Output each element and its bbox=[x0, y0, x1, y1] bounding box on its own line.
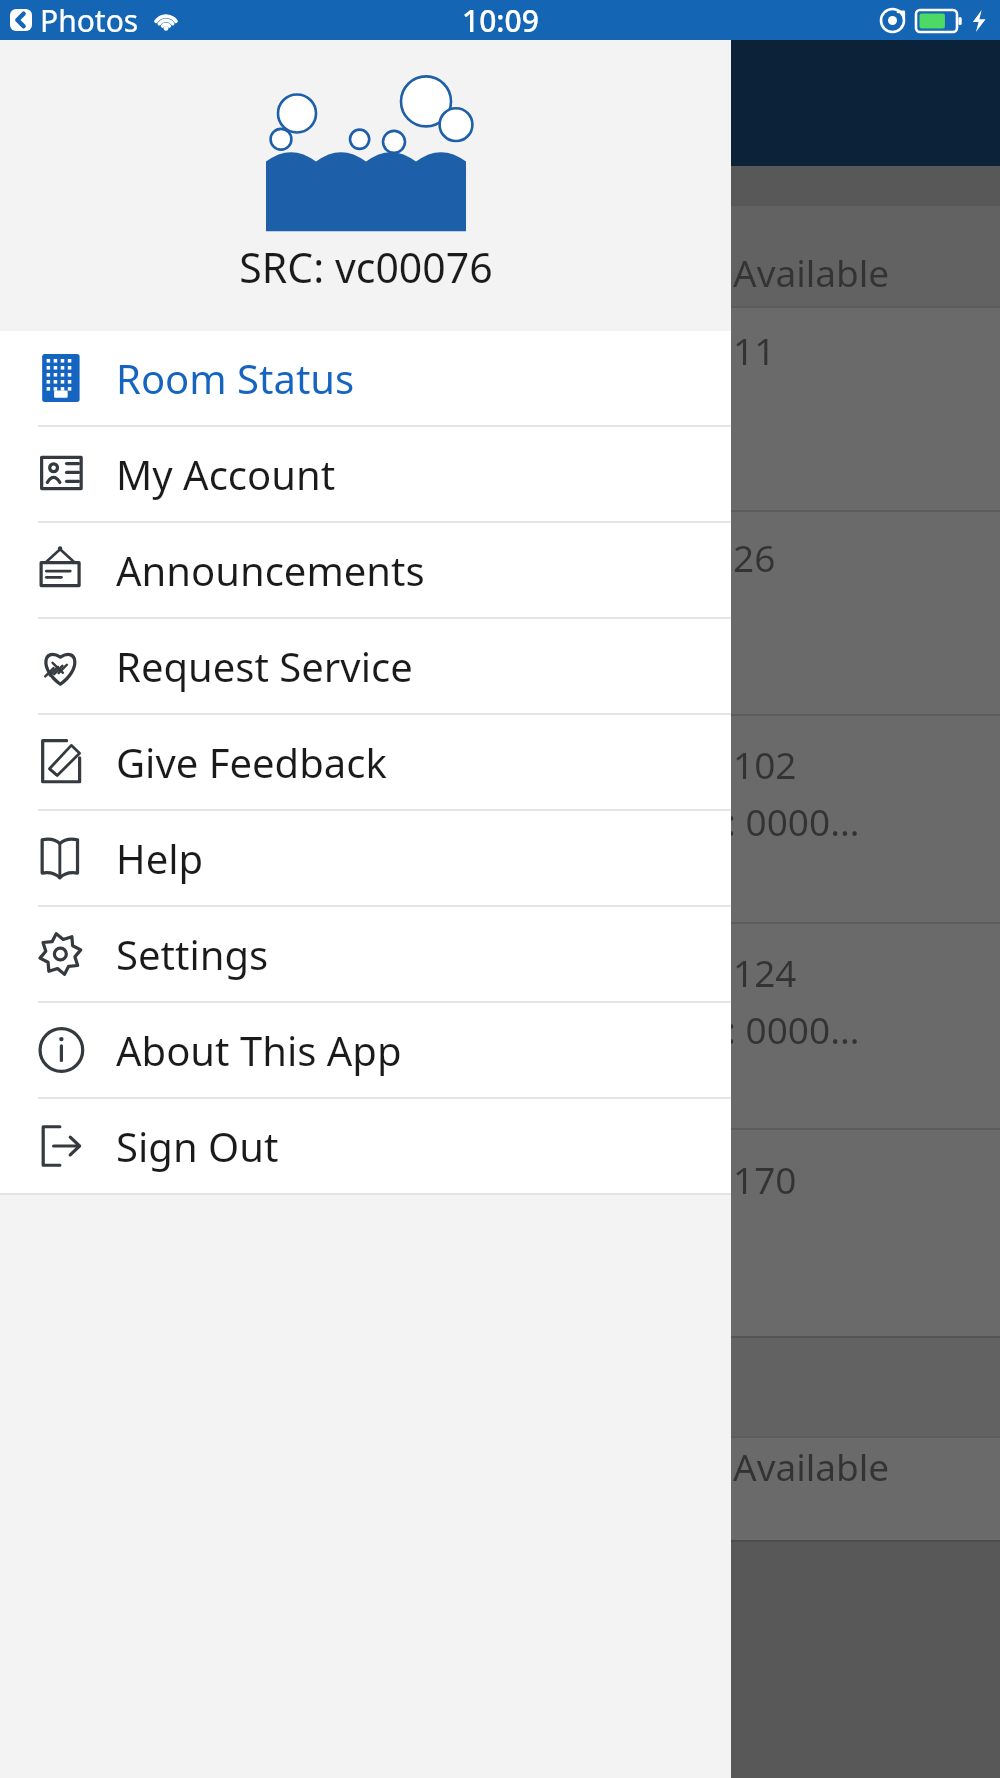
button[interactable]: My Account bbox=[0, 427, 731, 521]
staticText: Settings bbox=[116, 927, 269, 981]
staticText: SRC: vc00076 bbox=[239, 239, 493, 295]
staticText: 26 bbox=[733, 532, 776, 582]
button[interactable]: Help bbox=[0, 811, 731, 905]
staticText: 10:09 bbox=[462, 0, 539, 40]
staticText: Sign Out bbox=[116, 1119, 279, 1173]
staticText: Help bbox=[116, 831, 204, 885]
staticText: Announcements bbox=[116, 543, 425, 597]
button[interactable]: Give Feedback bbox=[0, 715, 731, 809]
button[interactable]: Request Service bbox=[0, 619, 731, 713]
button[interactable]: About This App bbox=[0, 1003, 731, 1097]
button[interactable]: Room Status bbox=[0, 331, 731, 425]
staticText: : 0000… bbox=[726, 796, 860, 846]
staticText: 11 bbox=[733, 325, 776, 375]
staticText: 170 bbox=[733, 1154, 797, 1204]
staticText: Give Feedback bbox=[116, 735, 387, 789]
staticText: 124 bbox=[733, 947, 797, 997]
staticText: Photos bbox=[40, 0, 139, 40]
button[interactable]: Settings bbox=[0, 907, 731, 1001]
staticText: Room Status bbox=[116, 351, 355, 405]
staticText: About This App bbox=[116, 1023, 402, 1077]
staticText: 102 bbox=[733, 739, 797, 789]
staticText: Request Service bbox=[116, 639, 413, 693]
button[interactable]: Announcements bbox=[0, 523, 731, 617]
button[interactable]: Sign Out bbox=[0, 1099, 731, 1193]
staticText: Available bbox=[733, 247, 890, 297]
staticText: My Account bbox=[116, 447, 336, 501]
staticText: : 0000… bbox=[726, 1004, 860, 1054]
staticText: Available bbox=[733, 1441, 890, 1491]
